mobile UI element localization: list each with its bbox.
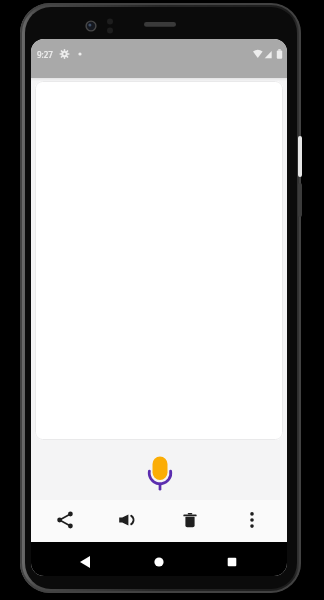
button[interactable] bbox=[113, 506, 141, 534]
button[interactable] bbox=[51, 506, 79, 534]
button[interactable] bbox=[218, 548, 246, 576]
button[interactable] bbox=[143, 453, 177, 495]
staticText: 9:27 bbox=[37, 49, 53, 60]
button[interactable] bbox=[176, 506, 204, 534]
button[interactable] bbox=[145, 548, 173, 576]
button[interactable] bbox=[238, 506, 266, 534]
button[interactable] bbox=[71, 548, 99, 576]
